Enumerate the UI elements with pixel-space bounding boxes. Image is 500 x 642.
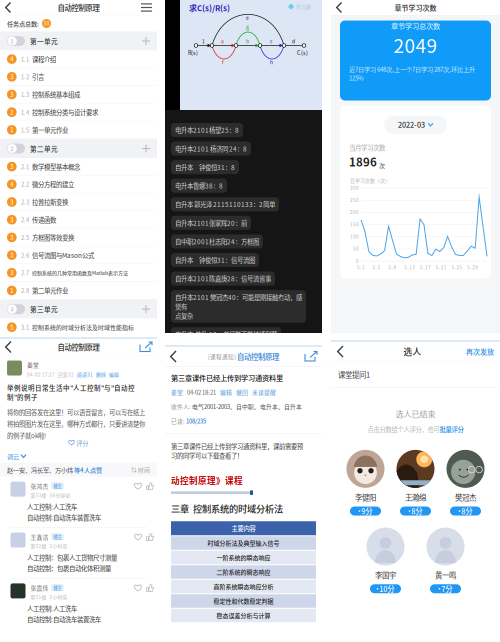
staticText: C(s) [297,48,308,56]
button[interactable]: Back [165,347,190,366]
button[interactable]: 调云 [7,452,26,461]
button[interactable]: 3 [0,246,157,264]
staticText: 自升本2101 樊冠杰40：可能是刚接触冇动，感觉有 点复杂 [175,292,302,320]
button[interactable]: 1 [0,121,157,139]
button[interactable]: 3 [0,264,157,282]
button[interactable]: Back [331,342,359,361]
staticText: 101 [43,20,49,27]
staticText: 楼主 [53,534,61,540]
button[interactable]: Menu [132,0,157,15]
staticText: 自中职2001杜志阳24：方框图 [175,237,259,246]
button[interactable]: Rate [134,483,141,490]
button[interactable]: 5 [0,319,157,336]
staticText: 已读: [171,417,186,425]
button[interactable]: Rate [134,584,141,591]
staticText: d [292,37,295,45]
staticText: 李健阳 [355,492,376,502]
staticText: 自升本 郭光泽 2115110133：2简单 [175,200,275,209]
button[interactable]: 3 [0,300,157,319]
button[interactable]: Share [132,337,157,356]
staticText: 方框图等效变换 [32,233,74,242]
staticText: 调云 [7,452,19,461]
button[interactable]: 3 [0,86,157,104]
staticText: 3.1 [21,323,29,331]
button[interactable]: 3 [0,229,157,246]
staticText: 2.5 [21,233,29,242]
staticText: c [270,37,273,45]
staticText: 1 [10,126,13,134]
staticText: 举例说明日常生活中"人工控制"与"自动控制"的例子 [7,383,135,402]
staticText: 第三单元 [30,304,58,314]
button[interactable]: 再次发放 [466,346,500,356]
button[interactable]: Share [297,347,322,366]
button[interactable]: Back [0,337,25,356]
staticText: 自升本2101陈嘉庚28：信号流省事 [175,274,271,283]
staticText: 一阶系统的瞬态响应 [216,553,270,562]
staticText: 3 [10,269,13,277]
button[interactable]: 批量评分 [439,425,463,434]
staticText: 第三章课件已经上传到学习通资料里 [171,372,283,383]
button[interactable]: 2 [0,139,157,158]
staticText: a [221,37,224,45]
staticText: 5-17 [420,264,431,270]
button[interactable]: 黄一鸣 [426,528,464,593]
staticText: 4 [10,55,13,63]
staticText: 章节学习次数 [394,2,436,12]
staticText: 2.1 [21,162,29,171]
button[interactable]: 1 [0,31,157,50]
staticText: 自动控制原理 [57,2,99,13]
button[interactable]: 李国宇 [366,528,404,593]
button[interactable]: 4 [0,50,157,68]
staticText: 人工控制：包裹人工货物尺寸测量 [27,553,117,562]
staticText: 1 [10,286,13,294]
staticText: 动控制原理》课程 [171,474,243,486]
staticText: 8分 [461,506,472,516]
button[interactable]: Back [0,0,25,15]
button[interactable]: 1 [0,282,157,300]
button[interactable]: 3 [0,193,157,211]
staticText: 樊冠杰 [455,492,476,502]
button[interactable]: Back [331,0,356,15]
staticText: 2.2 [21,180,29,188]
button[interactable]: 评分 [69,438,88,447]
button[interactable]: 樊冠杰 [446,450,484,515]
staticText: 主要内容 [231,524,255,533]
staticText: 2.8 [21,286,29,295]
staticText: 2小时前 [49,593,67,600]
staticText: 任务点总数: [7,19,39,28]
staticText: 拉普拉斯变换 [32,197,68,207]
button[interactable]: ⇅ 时间 [131,465,150,474]
button[interactable]: 2022-03 [384,115,447,134]
staticText: 5-9 [388,264,396,270]
button[interactable]: 3 [0,211,157,229]
staticText: 控制系统基本组成 [32,90,80,99]
button[interactable]: Like [146,534,153,541]
staticText: 选人已结束 [395,408,435,420]
button[interactable]: 王瀚绵 [396,450,434,515]
button[interactable]: 李健阳 [346,450,384,515]
button[interactable]: 2 [0,104,157,121]
button[interactable]: 3 [0,158,157,176]
staticText: 自动控制:自动洗车装置洗车 [27,513,101,522]
staticText: R(s) [188,48,198,56]
button[interactable]: Rate [134,534,141,541]
button[interactable]: 3 [0,68,157,86]
staticText: 数学模型基本概念 [32,162,80,171]
button[interactable]: 4 [0,176,157,193]
staticText: 求C(s)/R(s) [189,2,230,14]
button[interactable]: 等4人点赞 [74,465,102,474]
staticText: 自动控制原理 [237,351,279,362]
staticText: 200 [350,209,359,215]
staticText: 5-1 [357,264,365,270]
staticText: 4 [10,180,13,188]
staticText: 李国宇 [375,570,396,580]
staticText: h [270,58,273,66]
staticText: 2 [11,145,14,152]
staticText: 日学习次数（次） [350,177,390,184]
button[interactable]: Like [146,483,153,490]
staticText: 次 [379,161,385,170]
staticText: 第32楼 [30,542,46,549]
staticText: 3 [10,216,13,224]
button[interactable]: Like [146,584,153,591]
staticText: 控制系统的几种常用函数及Matlab表示方法 [32,269,128,276]
